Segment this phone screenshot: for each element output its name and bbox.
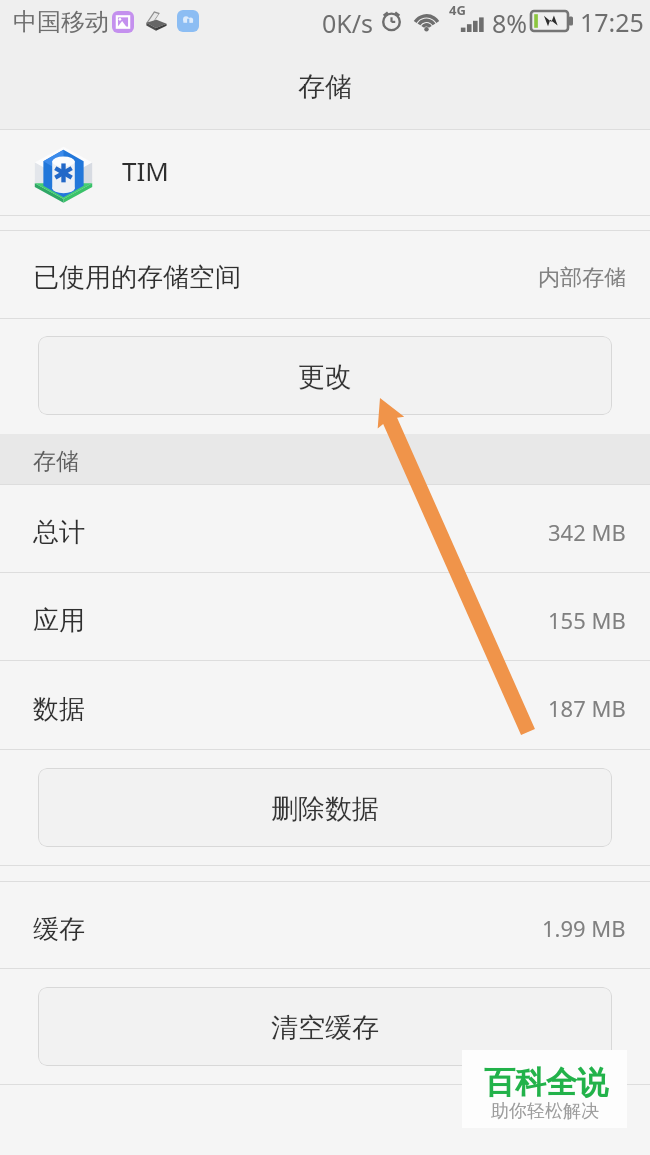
other: USB connected (144, 10, 168, 32)
staticText: 已使用的存储空间 (33, 261, 241, 294)
staticText: TIM (122, 153, 169, 188)
staticText: 百科全说 (484, 1063, 608, 1102)
staticText: 0K/s (322, 6, 374, 40)
staticText: 助你轻松解决 (491, 1100, 599, 1123)
staticText: 总计 (33, 516, 85, 549)
other: Alarm set (380, 9, 403, 32)
staticText: 清空缓存 (271, 1011, 379, 1045)
staticText: 内部存储 (538, 264, 626, 292)
button[interactable]: 缓存 (0, 882, 650, 968)
staticText: 187 MB (548, 693, 626, 723)
other: Wi-Fi (412, 10, 441, 33)
button[interactable]: 数据 (0, 661, 650, 749)
staticText: 中国移动 (13, 7, 109, 37)
staticText: 8% (492, 6, 528, 40)
staticText: 155 MB (548, 605, 626, 635)
button[interactable]: 已使用的存储空间 (0, 231, 650, 318)
staticText: 更改 (298, 360, 352, 394)
staticText: 4G (449, 1, 466, 19)
staticText: 存储 (298, 70, 352, 104)
button[interactable]: 清空缓存 (38, 987, 612, 1066)
button[interactable]: 更改 (38, 336, 612, 415)
staticText: 删除数据 (271, 792, 379, 826)
button[interactable]: TIM (0, 130, 650, 215)
button[interactable]: 删除数据 (38, 768, 612, 847)
staticText: 17:25 (580, 5, 644, 39)
button[interactable]: 总计 (0, 485, 650, 572)
other: Screenshot (112, 11, 134, 33)
other: Cloud backup (177, 10, 199, 32)
staticText: 数据 (33, 693, 85, 726)
other: Mobile signal (456, 12, 483, 32)
button[interactable]: 应用 (0, 573, 650, 660)
staticText: 342 MB (548, 517, 626, 547)
staticText: 缓存 (33, 913, 85, 946)
staticText: 1.99 MB (542, 913, 626, 943)
staticText: 存储 (33, 447, 79, 476)
staticText: 应用 (33, 604, 85, 637)
other: Battery charging 8 percent (531, 11, 573, 31)
